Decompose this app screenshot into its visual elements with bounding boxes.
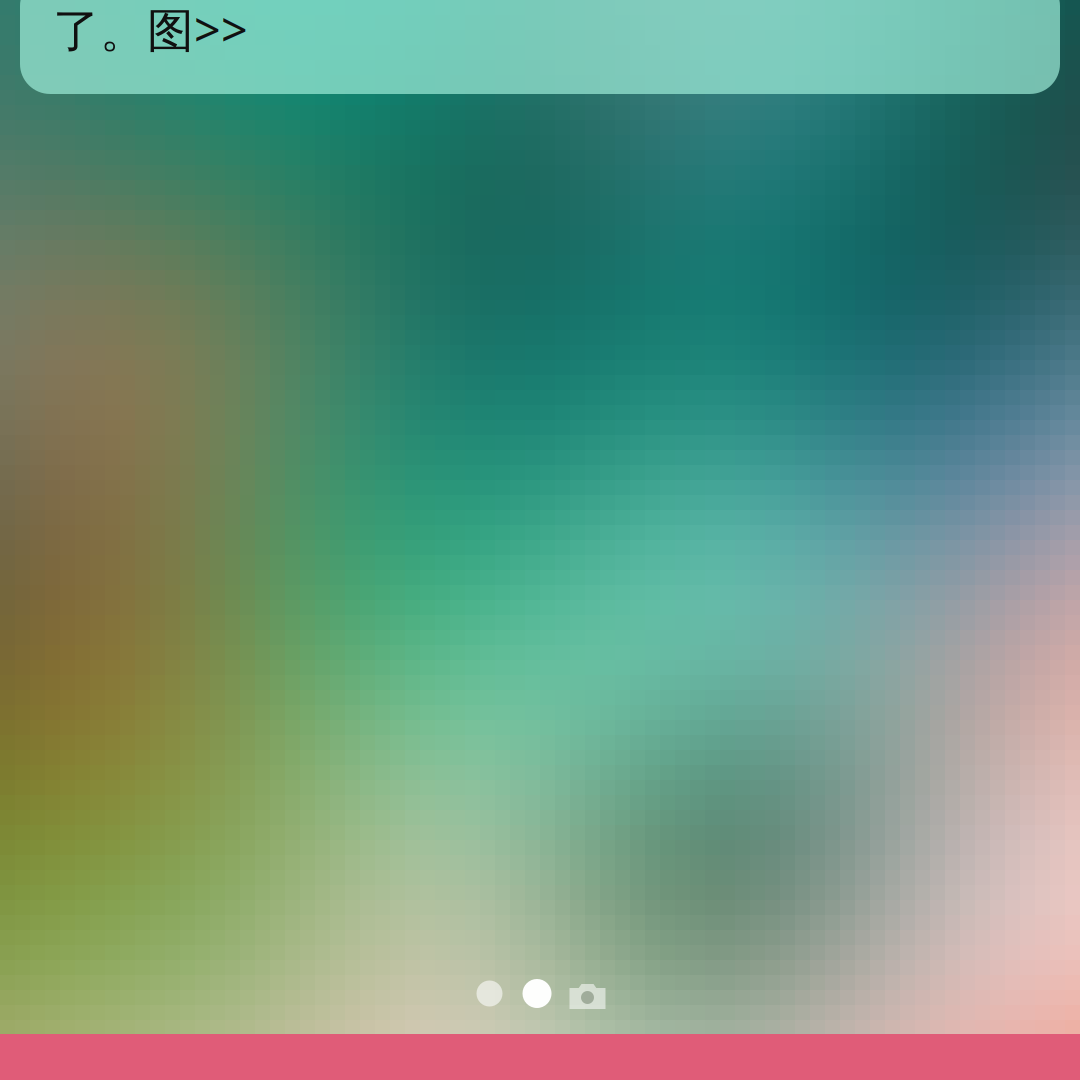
button[interactable]: Photo 2 (512, 971, 561, 1016)
staticText: 了。图>> (53, 0, 248, 60)
button[interactable]: Photo 1 (466, 972, 512, 1014)
button[interactable]: Camera (561, 972, 613, 1015)
